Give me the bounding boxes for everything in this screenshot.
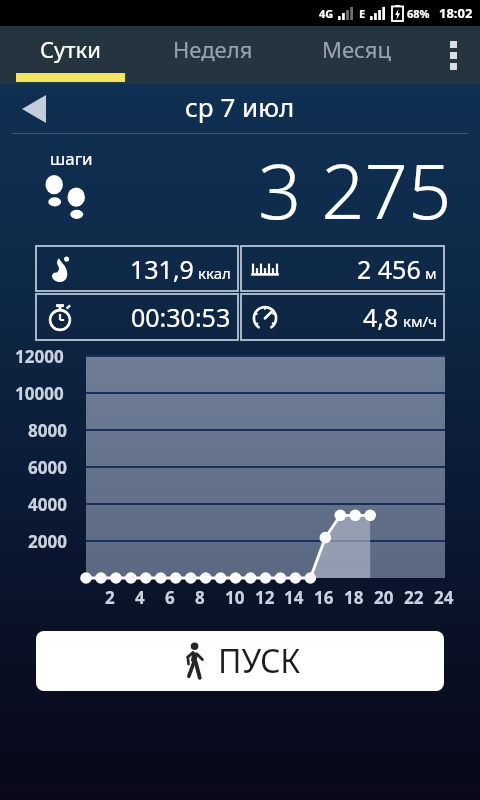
staticText: Сутки <box>40 34 101 64</box>
staticText: 24 <box>434 586 454 609</box>
staticText: 2 <box>105 586 115 609</box>
staticText: 3 275 <box>258 138 452 242</box>
staticText: E <box>359 6 366 21</box>
staticText: 6000 <box>28 456 67 479</box>
button[interactable]: 4,8 <box>241 294 444 340</box>
button[interactable]: Неделя <box>140 26 286 84</box>
staticText: км/ч <box>403 311 437 331</box>
staticText: 131,9 <box>130 252 194 286</box>
button[interactable]: 00:30:53 <box>36 294 238 340</box>
staticText: 20 <box>374 586 394 609</box>
staticText: 6 <box>165 586 175 609</box>
staticText: 2000 <box>28 530 67 553</box>
staticText: 4000 <box>28 493 67 516</box>
staticText: ПУСК <box>218 639 301 683</box>
staticText: 68% <box>407 6 430 21</box>
staticText: ккал <box>198 263 231 283</box>
staticText: 16 <box>314 586 334 609</box>
button[interactable]: 2 456 <box>241 246 444 291</box>
staticText: 18 <box>344 586 364 609</box>
staticText: 12000 <box>15 345 64 368</box>
button[interactable]: ПУСК <box>36 631 444 691</box>
staticText: 10000 <box>15 382 64 405</box>
staticText: 00:30:53 <box>131 300 231 334</box>
staticText: 8 <box>195 586 205 609</box>
staticText: 18:02 <box>439 4 473 22</box>
staticText: 8000 <box>28 419 67 442</box>
button[interactable]: 131,9 <box>36 246 238 291</box>
button[interactable]: Previous day <box>12 87 56 131</box>
staticText: 4,8 <box>363 300 399 334</box>
staticText: м <box>425 263 437 283</box>
button[interactable]: More options <box>426 26 480 84</box>
staticText: 2 456 <box>357 252 421 286</box>
staticText: 22 <box>404 586 424 609</box>
staticText: 4 <box>135 586 145 609</box>
staticText: 4G <box>319 6 334 21</box>
staticText: шаги <box>50 147 93 170</box>
button[interactable]: Сутки <box>0 26 140 84</box>
button[interactable]: Месяц <box>286 26 426 84</box>
staticText: 12 <box>255 586 275 609</box>
staticText: 10 <box>225 586 245 609</box>
staticText: 14 <box>284 586 304 609</box>
staticText: Неделя <box>173 34 253 64</box>
staticText: Месяц <box>322 34 391 64</box>
staticText: ср 7 июл <box>185 89 295 124</box>
